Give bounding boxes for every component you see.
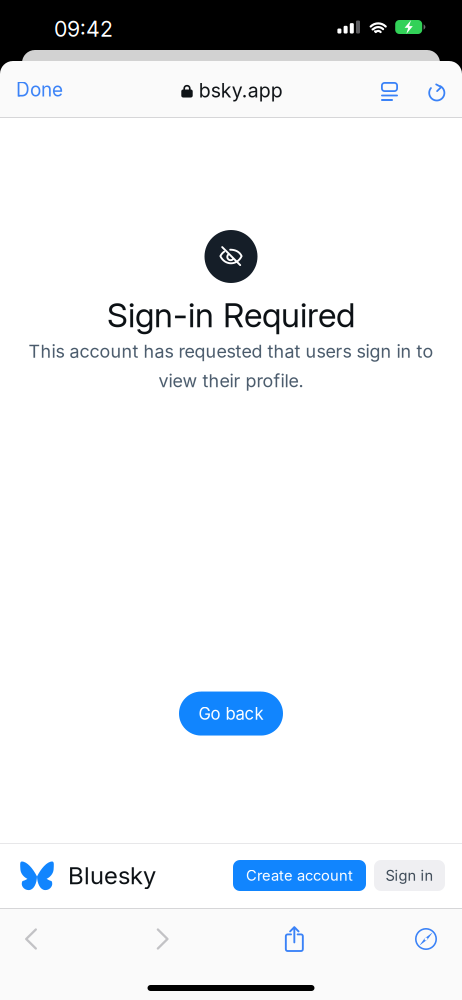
staticText: This account has requested that users si… [28, 340, 433, 362]
button[interactable]: Forward [132, 914, 194, 964]
button[interactable]: Sign in [374, 860, 445, 891]
staticText: bsky.app [199, 79, 283, 102]
button[interactable]: Share [263, 914, 325, 964]
staticText: view their profile. [158, 370, 303, 391]
staticText: Create account [246, 867, 353, 884]
button[interactable]: Open in Safari [395, 914, 457, 964]
button[interactable]: Back [0, 914, 62, 964]
staticText: Done [16, 78, 63, 101]
staticText: Sign-in Required [107, 295, 355, 335]
staticText: Bluesky [68, 861, 156, 890]
staticText: Sign in [385, 867, 433, 884]
button[interactable]: Done [0, 61, 77, 118]
button[interactable]: Go back [179, 692, 283, 736]
button[interactable]: Reload [415, 61, 462, 118]
staticText: Go back [198, 703, 263, 724]
button[interactable]: Create account [233, 860, 366, 891]
staticText: 09:42 [54, 16, 113, 42]
button[interactable]: Reader view [368, 61, 411, 118]
